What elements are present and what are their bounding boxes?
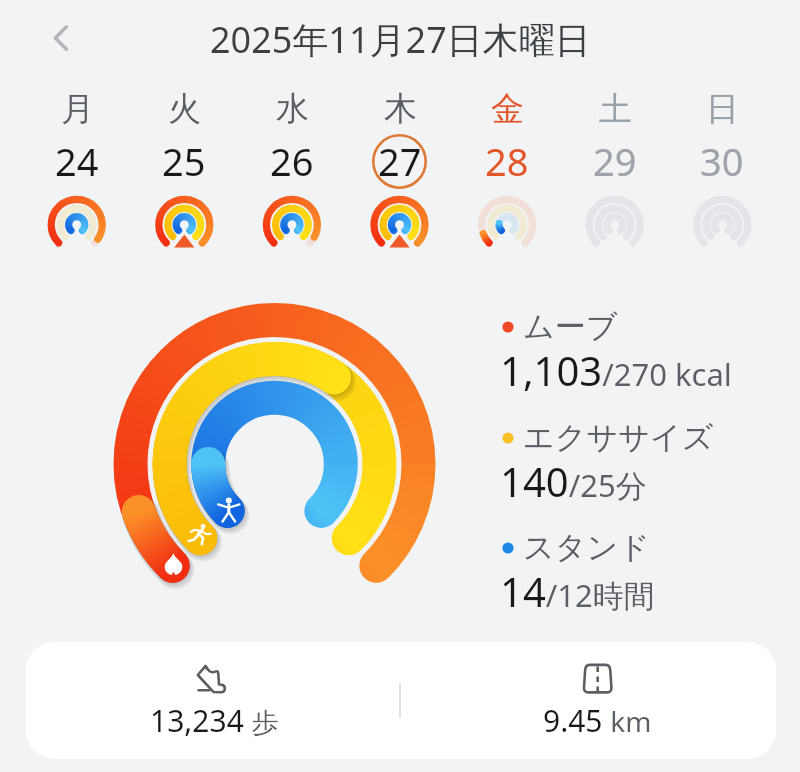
button[interactable]: エクササイズ bbox=[496, 411, 756, 509]
staticText: 29 bbox=[593, 135, 637, 187]
staticText: 日 bbox=[706, 88, 739, 130]
button[interactable]: 月 bbox=[29, 88, 125, 198]
button[interactable]: 13,234 歩 bbox=[26, 642, 776, 759]
staticText: 27 bbox=[378, 135, 422, 187]
staticText: 土 bbox=[599, 88, 632, 130]
staticText: 9.45 km bbox=[543, 700, 652, 741]
button[interactable]: 土 bbox=[567, 88, 663, 198]
staticText: スタンド bbox=[523, 528, 650, 567]
staticText: 26 bbox=[270, 135, 314, 187]
staticText: エクササイズ bbox=[523, 418, 714, 457]
button[interactable]: ムーブ bbox=[496, 300, 756, 398]
button[interactable]: Back bbox=[38, 15, 84, 61]
staticText: 金 bbox=[491, 88, 524, 130]
staticText: 木 bbox=[384, 88, 417, 130]
staticText: 火 bbox=[168, 88, 201, 130]
button[interactable]: 水 bbox=[244, 88, 340, 198]
button[interactable]: 木 bbox=[352, 88, 448, 198]
staticText: 2025年11月27日木曜日 bbox=[210, 15, 591, 64]
staticText: 水 bbox=[276, 88, 309, 130]
staticText: 24 bbox=[55, 135, 99, 187]
button[interactable]: 火 bbox=[136, 88, 232, 198]
staticText: 14/12時間 bbox=[500, 564, 655, 618]
staticText: 140/25分 bbox=[500, 454, 647, 508]
button[interactable]: 金 bbox=[459, 88, 555, 198]
button[interactable]: 日 bbox=[674, 88, 770, 198]
staticText: 月 bbox=[61, 88, 94, 130]
button[interactable]: スタンド bbox=[496, 521, 756, 619]
staticText: 25 bbox=[162, 135, 206, 187]
staticText: 30 bbox=[700, 135, 744, 187]
staticText: 28 bbox=[485, 135, 529, 187]
staticText: 1,103/270 kcal bbox=[500, 343, 732, 397]
staticText: ムーブ bbox=[523, 307, 618, 346]
staticText: 13,234 歩 bbox=[150, 700, 279, 741]
